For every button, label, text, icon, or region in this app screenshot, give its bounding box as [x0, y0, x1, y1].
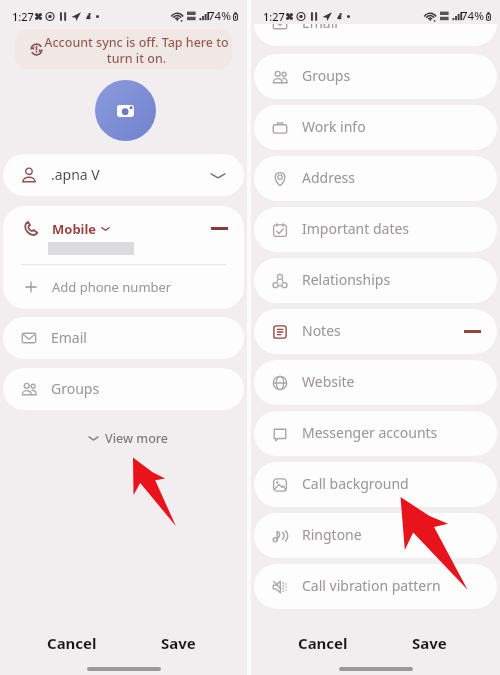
staticText: Account sync is off. Tap here to turn it…: [39, 34, 232, 67]
button[interactable]: Save: [134, 615, 222, 670]
button[interactable]: Add phone number: [3, 265, 244, 309]
staticText: Email: [302, 24, 338, 32]
button[interactable]: .apna V: [3, 154, 244, 196]
staticText: Groups: [51, 379, 100, 398]
button[interactable]: Work info: [254, 105, 497, 150]
button[interactable]: Call vibration pattern: [254, 564, 497, 609]
button[interactable]: Website: [254, 360, 497, 405]
button[interactable]: View more: [88, 428, 169, 449]
button[interactable]: Important dates: [254, 207, 497, 252]
staticText: Add phone number: [52, 278, 172, 296]
button[interactable]: Email: [254, 24, 497, 46]
staticText: Cancel: [298, 633, 348, 653]
button[interactable]: Relationships: [254, 258, 497, 303]
button[interactable]: Groups: [3, 368, 244, 410]
staticText: Email: [51, 328, 87, 347]
button[interactable]: Notes: [254, 309, 497, 354]
staticText: Important dates: [302, 219, 410, 238]
staticText: .apna V: [51, 165, 100, 184]
staticText: Save: [412, 633, 447, 653]
staticText: Groups: [302, 66, 351, 85]
staticText: Cancel: [47, 633, 97, 653]
button[interactable]: Ringtone: [254, 513, 497, 558]
staticText: 1:27: [12, 9, 34, 24]
button[interactable]: Messenger accounts: [254, 411, 497, 456]
staticText: Ringtone: [302, 525, 362, 544]
staticText: Save: [161, 633, 196, 653]
button[interactable]: Address: [254, 156, 497, 201]
staticText: Notes: [302, 321, 341, 340]
staticText: Relationships: [302, 270, 391, 289]
button[interactable]: Groups: [254, 54, 497, 99]
staticText: Website: [302, 372, 355, 391]
staticText: Call vibration pattern: [302, 576, 441, 595]
staticText: Mobile: [52, 220, 97, 238]
staticText: 74%: [208, 8, 231, 24]
button[interactable]: Account sync is off. Tap here to turn it…: [15, 29, 232, 69]
staticText: Work info: [302, 117, 366, 136]
staticText: 1:27: [263, 9, 285, 24]
button[interactable]: Email: [3, 317, 244, 359]
button[interactable]: Mobile: [3, 206, 244, 264]
staticText: Messenger accounts: [302, 423, 438, 442]
staticText: 74%: [461, 8, 484, 24]
button[interactable]: Cancel: [279, 615, 367, 670]
button[interactable]: Cancel: [28, 615, 116, 670]
button[interactable]: Save: [385, 615, 473, 670]
staticText: Address: [302, 168, 355, 187]
staticText: View more: [105, 430, 169, 447]
staticText: Call background: [302, 474, 409, 493]
button[interactable]: Change photo: [95, 80, 156, 141]
button[interactable]: Call background: [254, 462, 497, 507]
